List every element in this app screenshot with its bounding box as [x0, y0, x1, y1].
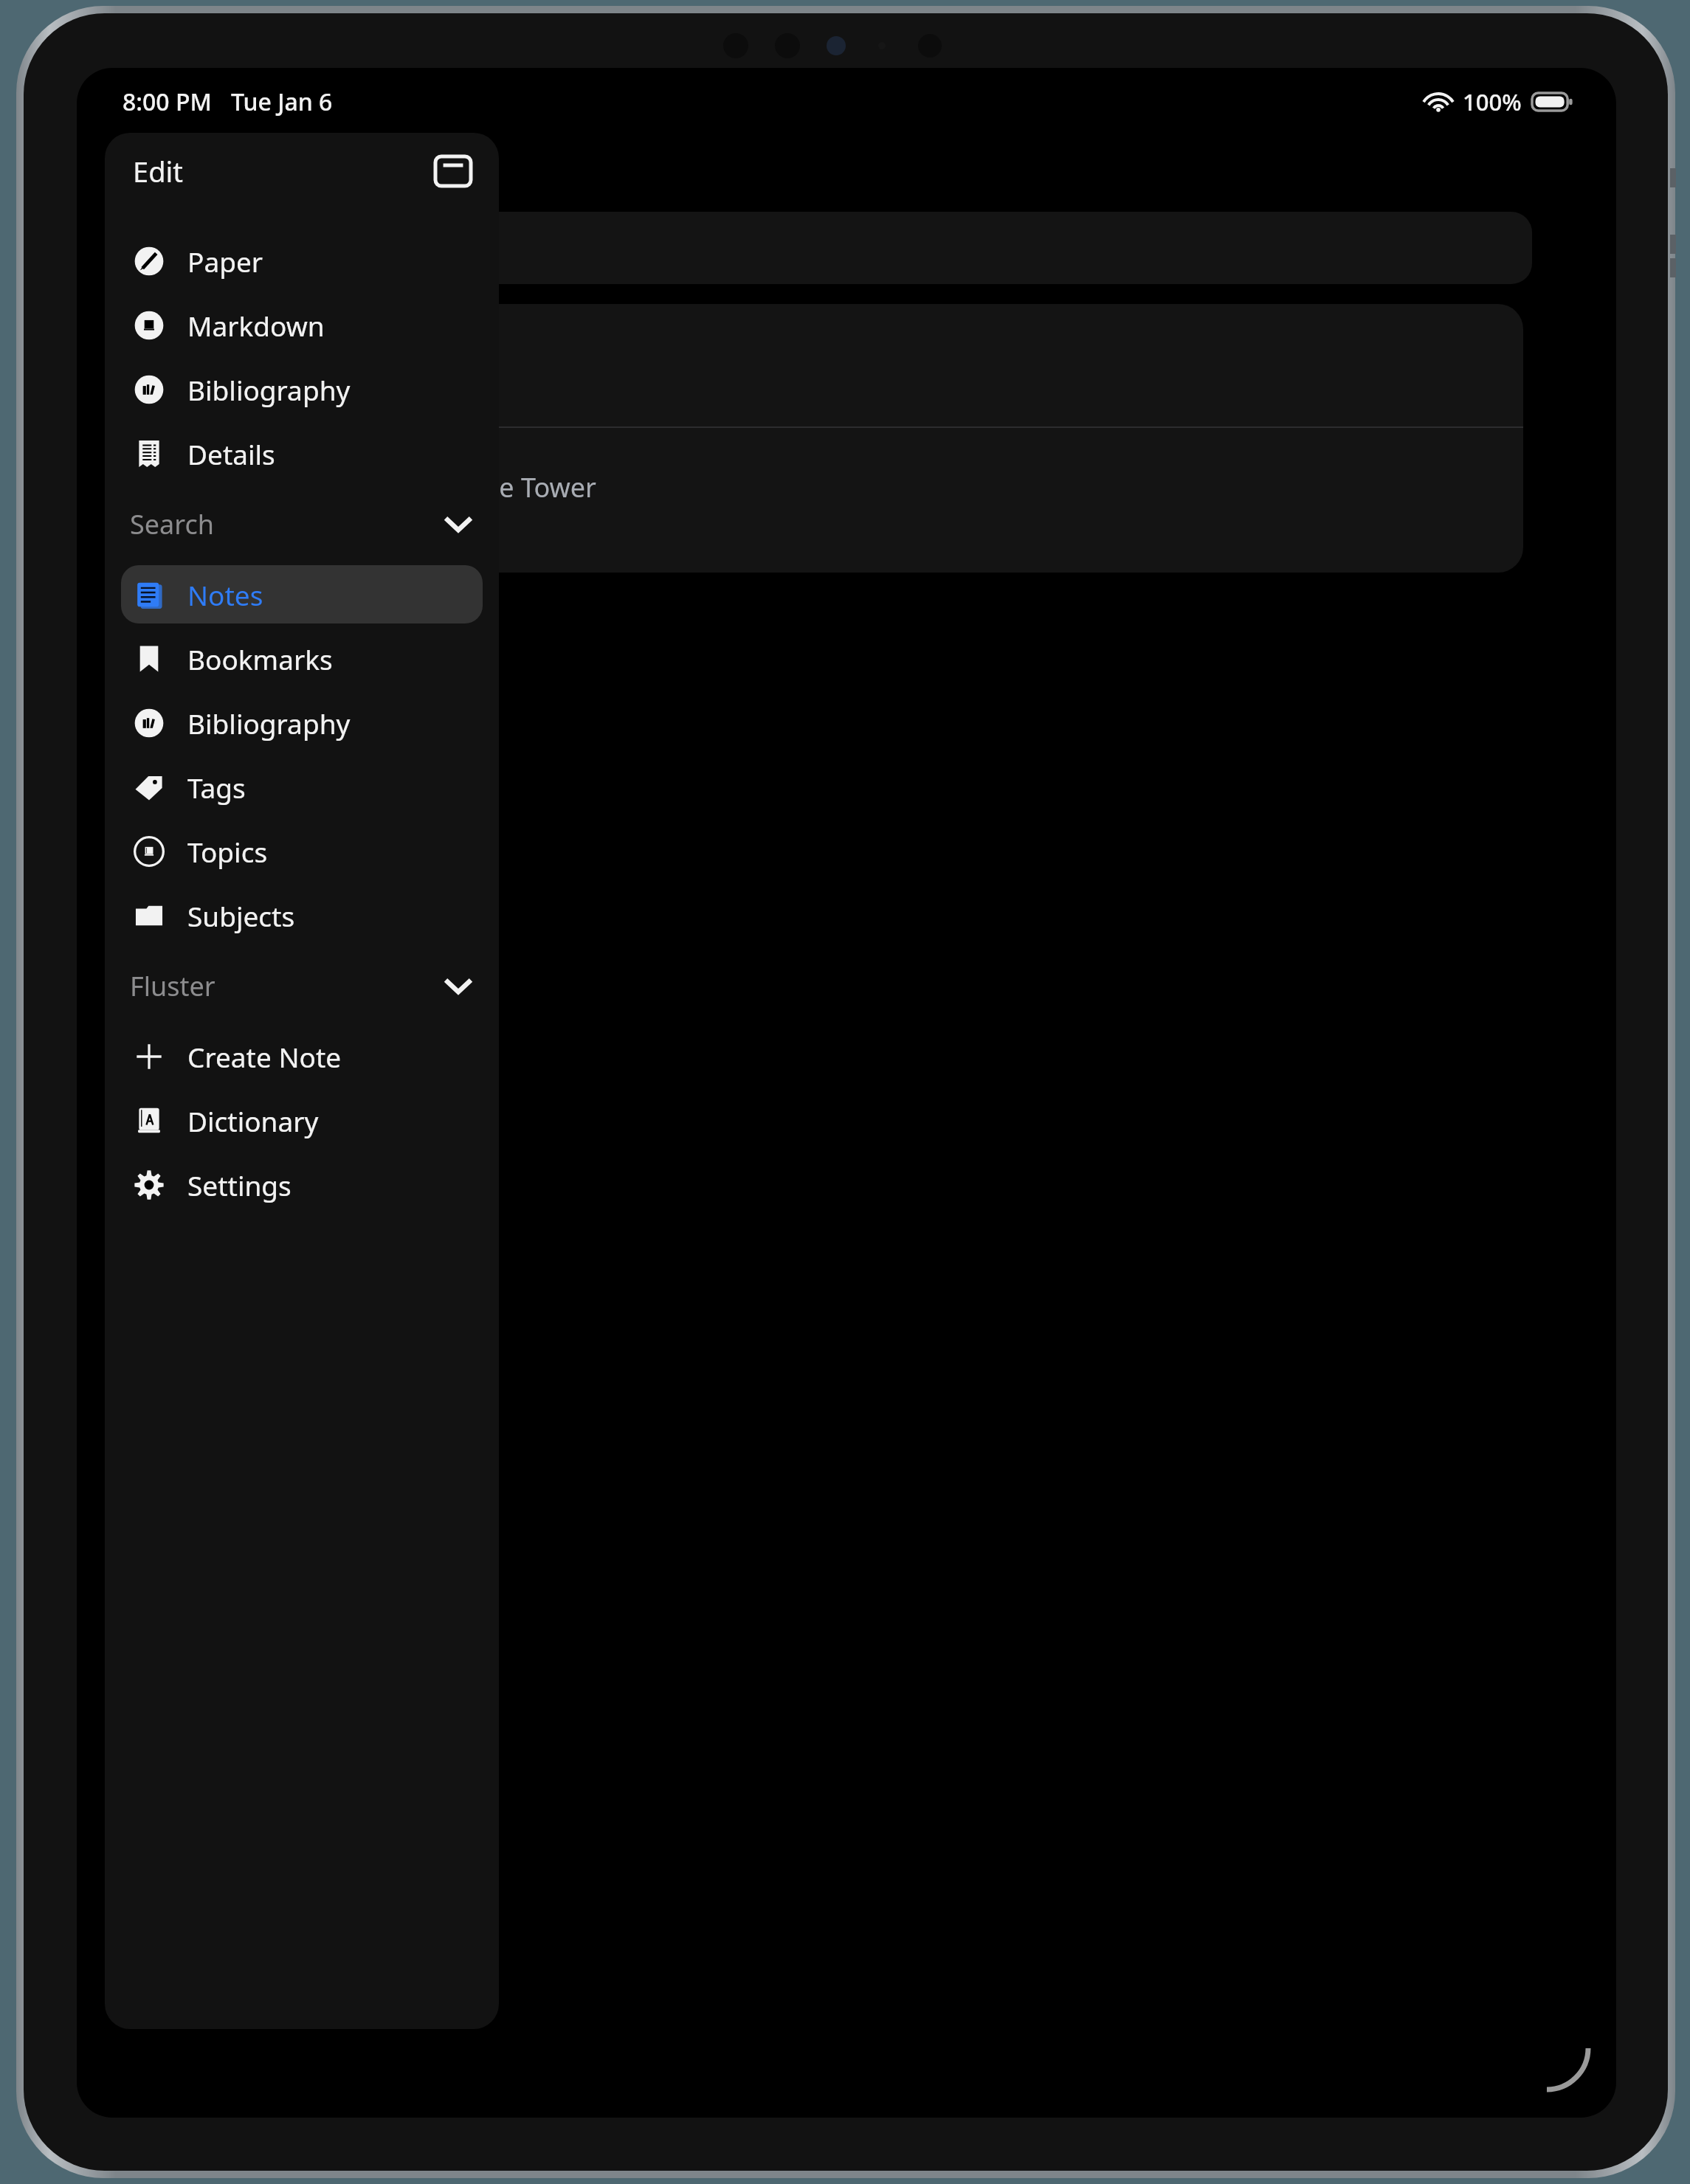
button[interactable]: Notes	[121, 565, 483, 623]
button[interactable]: Toggle sidebar	[432, 151, 474, 192]
staticText: Dictionary	[187, 1102, 319, 1139]
staticText: Markdown	[187, 307, 325, 344]
staticText: Paper	[187, 243, 263, 280]
staticText: Details	[187, 435, 275, 472]
button[interactable]: Create Note	[121, 1027, 483, 1085]
button[interactable]: Tags	[121, 758, 483, 816]
staticText: Subjects	[187, 897, 295, 934]
staticText: Search	[130, 506, 214, 542]
staticText: Bibliography	[187, 705, 351, 742]
staticText: The Tower	[468, 469, 596, 505]
button[interactable]: Paper	[121, 232, 483, 290]
button[interactable]: Markdown	[121, 296, 483, 354]
button[interactable]: Fluster	[105, 947, 499, 1024]
button[interactable]: Settings	[121, 1155, 483, 1214]
button[interactable]: Subjects	[121, 886, 483, 944]
button[interactable]: Bibliography	[121, 694, 483, 752]
button[interactable]: Bibliography	[121, 360, 483, 418]
button[interactable]: Edit	[133, 152, 184, 190]
button[interactable]: Dictionary	[121, 1091, 483, 1150]
staticText: 100%	[1463, 86, 1522, 117]
staticText: Fluster	[130, 968, 215, 1004]
staticText: Notes	[187, 576, 263, 613]
button[interactable]: Topics	[121, 822, 483, 880]
staticText: Bookmarks	[187, 640, 333, 677]
staticText: Settings	[187, 1167, 292, 1203]
staticText: 8:00 PM	[123, 86, 212, 118]
staticText: Bibliography	[187, 371, 351, 408]
button[interactable]: Search	[105, 485, 499, 562]
staticText: Create Note	[187, 1038, 342, 1075]
staticText: Tags	[187, 769, 246, 806]
button[interactable]: Bookmarks	[121, 629, 483, 688]
staticText: Tue Jan 6	[231, 86, 333, 118]
button[interactable]: Details	[121, 424, 483, 483]
staticText: Topics	[187, 833, 268, 870]
